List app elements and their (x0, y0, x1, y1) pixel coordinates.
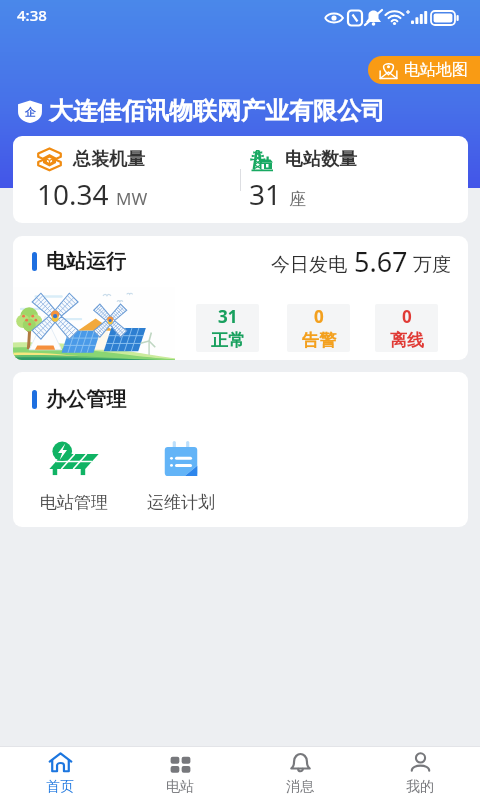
staticText: 离线 (390, 330, 424, 351)
staticText: 今日发电 (271, 253, 347, 277)
button[interactable]: 消息 (240, 747, 360, 800)
staticText: 正常 (211, 330, 245, 351)
button[interactable]: 首页 (0, 747, 120, 800)
button[interactable]: 0 (287, 304, 350, 352)
button[interactable]: 我的 (360, 747, 480, 800)
staticText: 办公管理 (46, 387, 126, 412)
staticText: 10.34 (37, 175, 109, 213)
staticText: 电站管理 (40, 492, 108, 513)
staticText: 0 (402, 305, 412, 328)
staticText: 座 (289, 189, 306, 210)
staticText: 首页 (46, 778, 74, 796)
staticText: 0 (314, 305, 324, 328)
button[interactable]: 电站 (120, 747, 240, 800)
staticText: 大连佳佰讯物联网产业有限公司 (49, 96, 385, 126)
staticText: 5.67 (354, 243, 408, 280)
staticText: 31 (249, 175, 282, 213)
button[interactable]: 运维计划 (147, 426, 215, 513)
staticText: 电站地图 (404, 60, 468, 80)
staticText: 电站数量 (285, 148, 357, 171)
staticText: 万度 (413, 253, 451, 277)
button[interactable]: 31 (196, 304, 259, 352)
staticText: 电站 (166, 778, 194, 796)
staticText: 企 (25, 105, 36, 119)
staticText: 我的 (406, 778, 434, 796)
staticText: 总装机量 (73, 148, 145, 171)
staticText: 告警 (302, 330, 336, 351)
staticText: 31 (218, 305, 238, 328)
staticText: 电站运行 (46, 249, 126, 274)
staticText: 4:38 (17, 5, 47, 25)
button[interactable]: 电站地图 (368, 56, 480, 84)
staticText: 消息 (286, 778, 314, 796)
staticText: MW (116, 187, 148, 210)
button[interactable]: 0 (375, 304, 438, 352)
staticText: 运维计划 (147, 492, 215, 513)
button[interactable]: 电站管理 (40, 426, 108, 513)
